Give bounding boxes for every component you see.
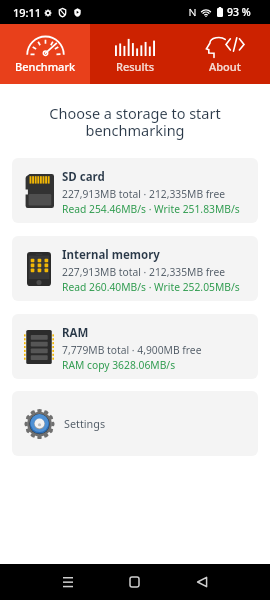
staticText: Internal memory [62, 247, 160, 263]
staticText: Read 260.40MB/s · Write 252.05MB/s [62, 280, 240, 294]
staticText: RAM copy 3628.06MB/s [62, 358, 176, 372]
staticText: 19:11 [13, 5, 42, 20]
button[interactable]: Benchmark [0, 24, 90, 84]
staticText: Choose a storage to start benchmarking [0, 103, 270, 140]
button[interactable]: SD card [12, 158, 258, 223]
staticText: Settings [64, 416, 106, 431]
staticText: Results [116, 59, 155, 74]
staticText: 227,913MB total · 212,335MB free [62, 187, 226, 201]
staticText: Read 254.46MB/s · Write 251.83MB/s [62, 202, 240, 216]
button[interactable]: Results [90, 24, 180, 84]
button[interactable]: Recent apps [34, 564, 101, 600]
staticText: 7,779MB total · 4,900MB free [62, 343, 202, 357]
button[interactable]: Back [168, 564, 235, 600]
staticText: 93 % [227, 5, 251, 19]
staticText: 227,913MB total · 212,335MB free [62, 265, 226, 279]
button[interactable]: Settings [12, 391, 258, 456]
staticText: About [209, 59, 241, 74]
button[interactable]: Internal memory [12, 236, 258, 301]
button[interactable]: RAM [12, 314, 258, 379]
staticText: Benchmark [15, 59, 76, 74]
button[interactable]: About [180, 24, 270, 84]
button[interactable]: Home [101, 564, 168, 600]
staticText: RAM [62, 325, 89, 341]
staticText: SD card [62, 169, 105, 185]
